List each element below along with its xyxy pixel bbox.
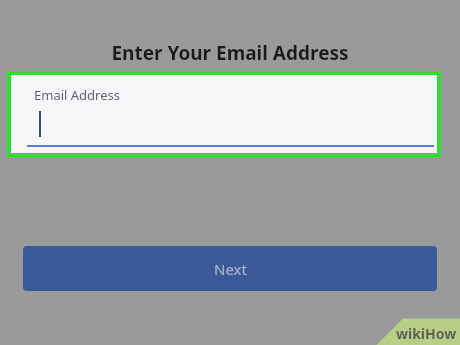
staticText: Next bbox=[214, 259, 247, 279]
button[interactable]: Next bbox=[23, 246, 437, 291]
staticText: Enter Your Email Address bbox=[0, 40, 460, 66]
staticText: Email Address bbox=[34, 86, 120, 104]
staticText: wikiHow bbox=[396, 324, 457, 343]
button[interactable]: Email Address input field bbox=[11, 75, 437, 153]
